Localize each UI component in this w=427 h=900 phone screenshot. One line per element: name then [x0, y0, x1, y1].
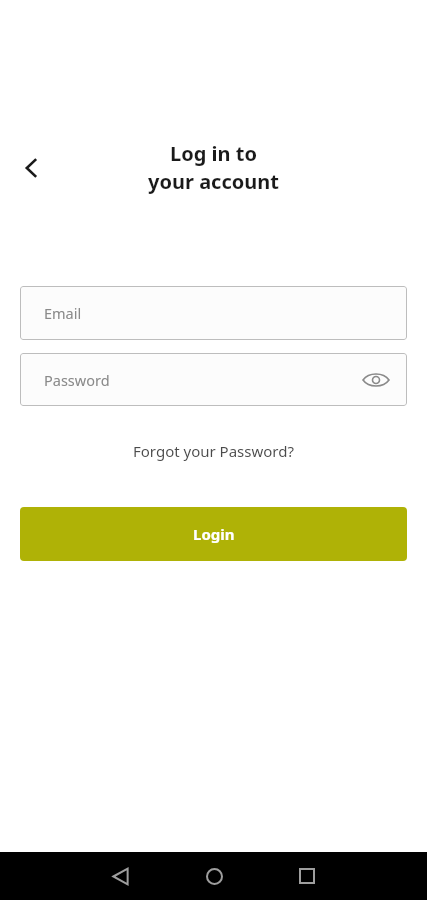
staticText: Password [44, 370, 110, 390]
button[interactable]: Forgot your Password? [123, 438, 304, 464]
button[interactable]: Recent apps [283, 852, 331, 900]
staticText: Log in to your account [148, 140, 279, 195]
staticText: Email [44, 303, 82, 323]
staticText: Login [193, 524, 235, 544]
button[interactable]: Email [20, 286, 407, 340]
button[interactable]: Back [8, 144, 56, 192]
staticText: Forgot your Password? [133, 441, 294, 461]
button[interactable]: Home [190, 852, 238, 900]
button[interactable]: Login [20, 507, 407, 561]
button[interactable]: Password [20, 353, 407, 406]
button[interactable]: Back [96, 852, 144, 900]
button[interactable]: Show password [359, 363, 393, 397]
